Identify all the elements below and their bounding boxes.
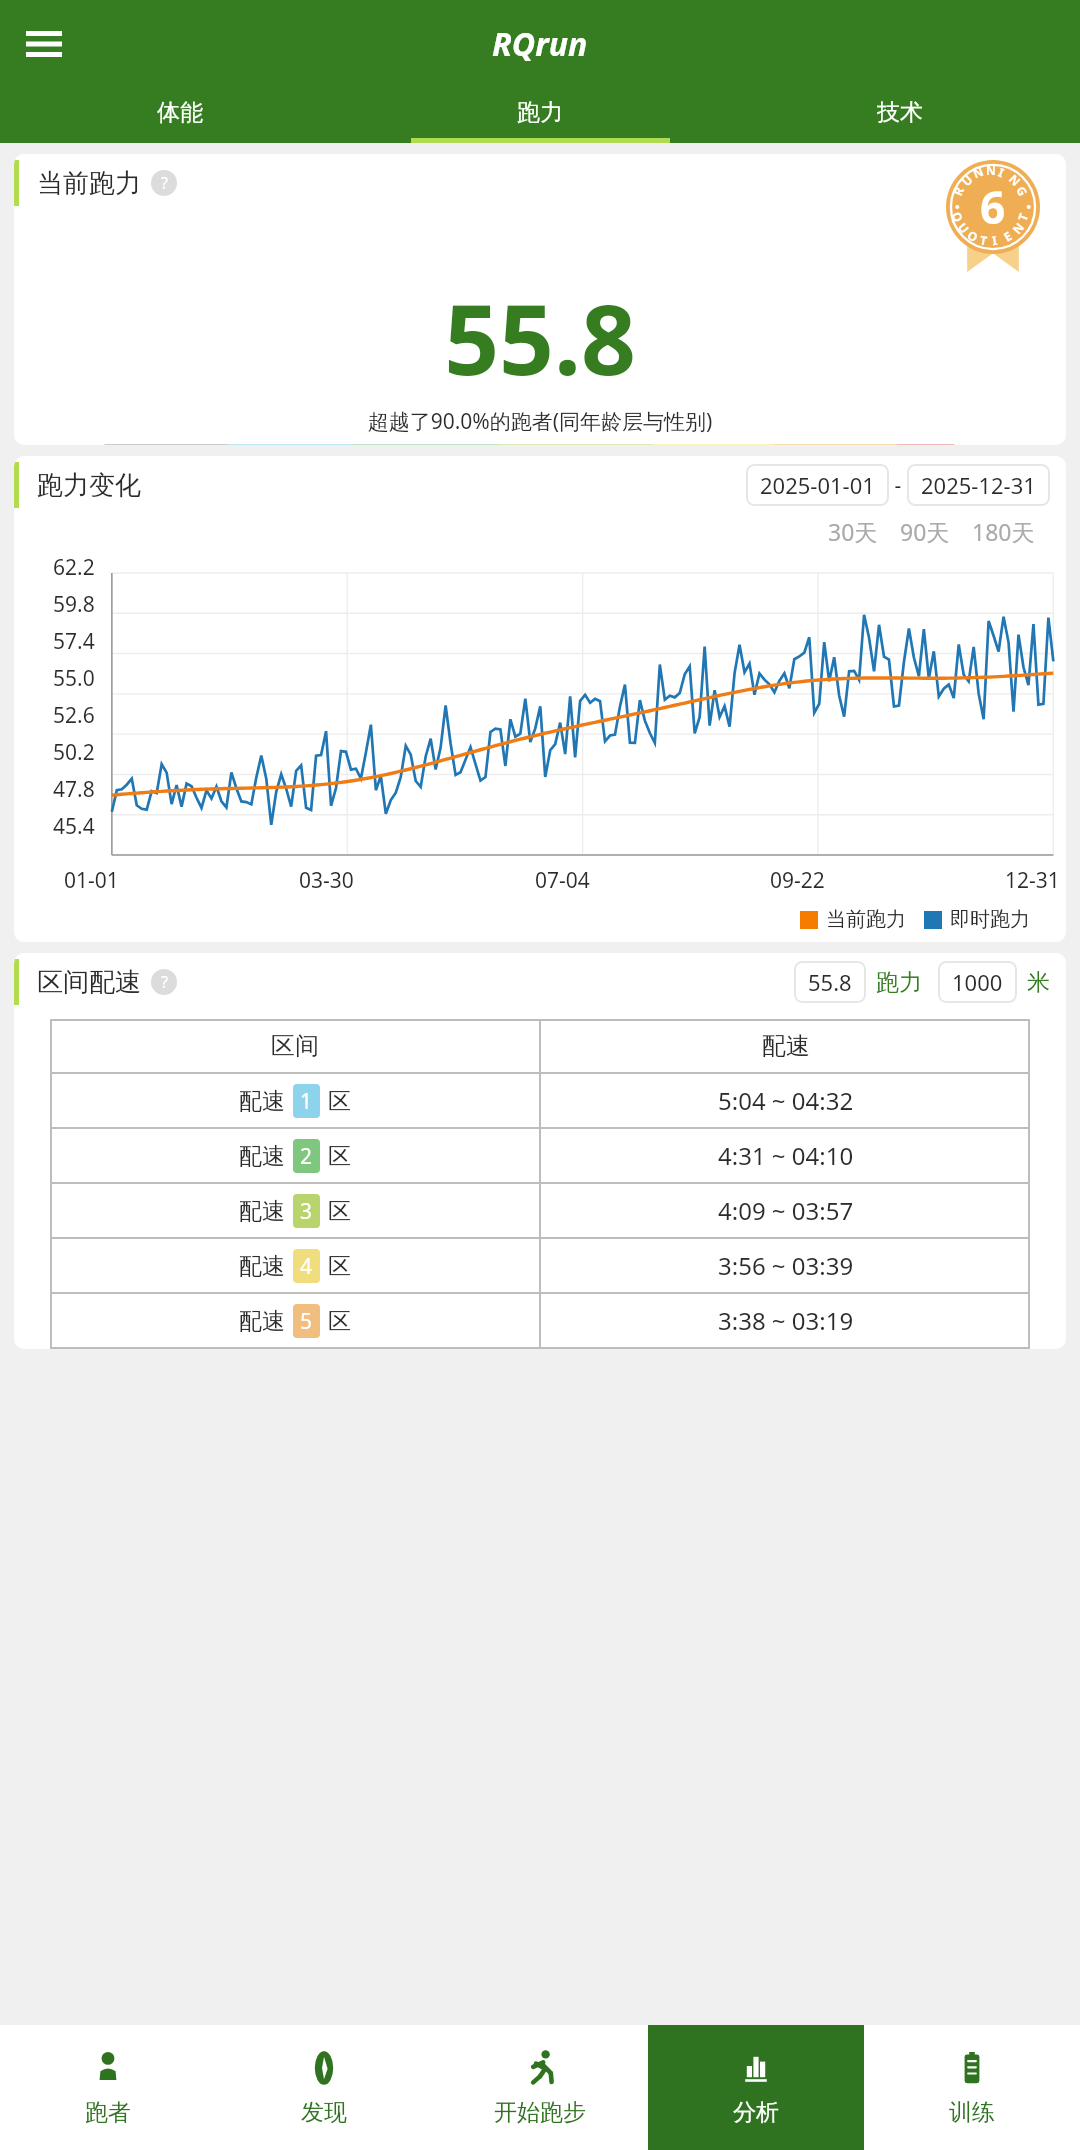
button[interactable]: 配速	[50, 1294, 1030, 1347]
staticText: 超越了90.0%的跑者(同年龄层与性别)	[14, 407, 1066, 436]
button[interactable]: 配速	[50, 1074, 1030, 1127]
staticText: 开始跑步	[494, 2098, 586, 2127]
staticText: 2025-01-01	[760, 470, 875, 500]
staticText: T	[1014, 211, 1031, 223]
staticText: N	[970, 163, 986, 181]
staticText: 区	[328, 1252, 351, 1281]
staticText: 当前跑力	[826, 907, 906, 932]
staticText: 区	[328, 1307, 351, 1336]
staticText: 技术	[877, 98, 923, 127]
button[interactable]: Help	[151, 170, 177, 196]
staticText: U	[958, 171, 976, 189]
staticText: RQrun	[492, 22, 588, 66]
button[interactable]: 训练	[864, 2025, 1080, 2150]
staticText: ?	[161, 971, 168, 993]
staticText: 01-01	[64, 866, 119, 895]
staticText: 区间配速	[37, 966, 141, 999]
staticText: 米	[1027, 968, 1050, 997]
staticText: 55.8	[808, 967, 852, 997]
button[interactable]: 90天	[889, 514, 961, 549]
staticText: N	[986, 162, 996, 178]
staticText: 2025-12-31	[921, 470, 1036, 500]
staticText: 配速	[239, 1252, 285, 1281]
staticText: 跑力	[517, 98, 563, 127]
staticText: 50.2	[53, 738, 95, 767]
staticText: 57.4	[53, 627, 95, 656]
staticText: 2	[300, 1142, 313, 1171]
staticText: Q	[949, 210, 967, 224]
button[interactable]: 体能	[0, 88, 360, 143]
staticText: 配速	[239, 1307, 285, 1336]
staticText: 90天	[900, 516, 950, 547]
button[interactable]: 跑力	[360, 88, 720, 143]
button[interactable]: 1000	[938, 961, 1017, 1003]
button[interactable]: 配速	[50, 1129, 1030, 1182]
staticText: 3:38 ~ 03:19	[718, 1304, 854, 1337]
staticText: 47.8	[53, 775, 95, 804]
staticText: G	[1013, 184, 1032, 198]
staticText: 45.4	[53, 812, 95, 841]
staticText: 03-30	[299, 866, 354, 895]
staticText: 4	[300, 1252, 313, 1281]
staticText: R	[949, 184, 967, 198]
staticText: 配速	[762, 1031, 810, 1061]
staticText: 3	[300, 1197, 313, 1226]
staticText: 跑者	[85, 2098, 131, 2127]
staticText: U	[955, 219, 973, 237]
staticText: 即时跑力	[950, 907, 1030, 932]
staticText: 配速	[239, 1142, 285, 1171]
staticText: 55.8	[14, 272, 1066, 403]
staticText: 5	[300, 1307, 313, 1336]
staticText: 跑力	[876, 968, 922, 997]
staticText: 180天	[972, 516, 1035, 547]
staticText: 当前跑力	[37, 167, 141, 200]
staticText: 5:04 ~ 04:32	[718, 1084, 854, 1117]
staticText: 30天	[828, 516, 878, 547]
staticText: ?	[161, 172, 168, 194]
button[interactable]: 技术	[720, 88, 1080, 143]
staticText: 区间	[271, 1031, 319, 1061]
staticText: 61.8	[924, 444, 970, 445]
staticText: 09-22	[770, 866, 825, 895]
button[interactable]: 2025-12-31	[907, 464, 1050, 506]
staticText: 52.6	[53, 701, 95, 730]
staticText: N	[1006, 171, 1024, 189]
staticText: 区	[328, 1197, 351, 1226]
button[interactable]: 2025-01-01	[746, 464, 889, 506]
staticText: O	[965, 227, 981, 245]
button[interactable]: 180天	[961, 514, 1046, 549]
staticText: 12-31	[1005, 866, 1060, 895]
staticText: 3:56 ~ 03:39	[718, 1249, 854, 1282]
button[interactable]: 发现	[216, 2025, 432, 2150]
staticText: 6	[980, 177, 1006, 237]
button[interactable]: 分析	[648, 2025, 864, 2150]
button[interactable]: 配速	[50, 1184, 1030, 1237]
staticText: 07-04	[535, 866, 590, 895]
button[interactable]: 跑者	[0, 2025, 216, 2150]
staticText: 跑力变化	[37, 469, 141, 502]
staticText: T	[979, 231, 988, 248]
button[interactable]: 开始跑步	[432, 2025, 648, 2150]
staticText: 配速	[239, 1197, 285, 1226]
staticText: 配速	[239, 1087, 285, 1116]
staticText: -	[889, 471, 907, 500]
staticText: 发现	[301, 2098, 347, 2127]
button[interactable]: 配速	[50, 1239, 1030, 1292]
staticText: 59.8	[53, 590, 95, 619]
button[interactable]: 30天	[817, 514, 889, 549]
button[interactable]: Menu	[16, 16, 72, 72]
staticText: 62.2	[53, 553, 95, 582]
staticText: 体能	[157, 98, 203, 127]
button[interactable]: Help	[151, 969, 177, 995]
staticText: 4:09 ~ 03:57	[718, 1194, 854, 1227]
button[interactable]: 55.8	[794, 961, 866, 1003]
staticText: I	[996, 164, 1007, 180]
staticText: E	[1000, 227, 1015, 245]
staticText: 1000	[952, 967, 1003, 997]
staticText: 区	[328, 1087, 351, 1116]
button[interactable]: 区间	[50, 1019, 1030, 1072]
staticText: 1	[300, 1087, 313, 1116]
staticText: I	[991, 232, 998, 248]
staticText: 55.0	[53, 664, 95, 693]
staticText: 区	[328, 1142, 351, 1171]
